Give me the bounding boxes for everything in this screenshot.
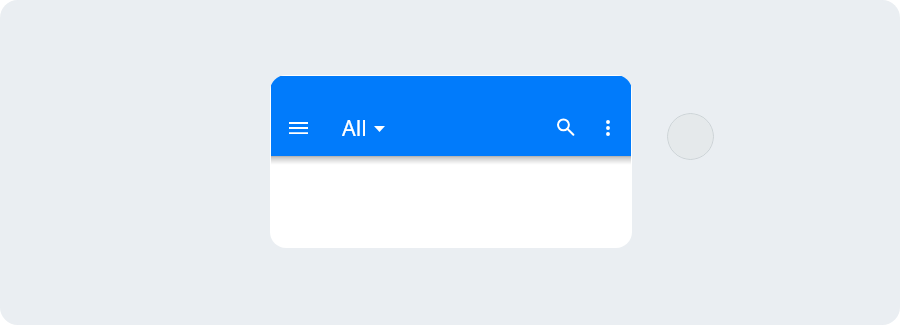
button[interactable]: Open navigation drawer — [278, 108, 318, 148]
staticText: All — [342, 113, 367, 142]
button[interactable]: Search — [546, 108, 586, 148]
button[interactable]: More options — [588, 108, 628, 148]
button[interactable]: Add — [667, 113, 714, 160]
button[interactable]: All — [336, 106, 392, 149]
